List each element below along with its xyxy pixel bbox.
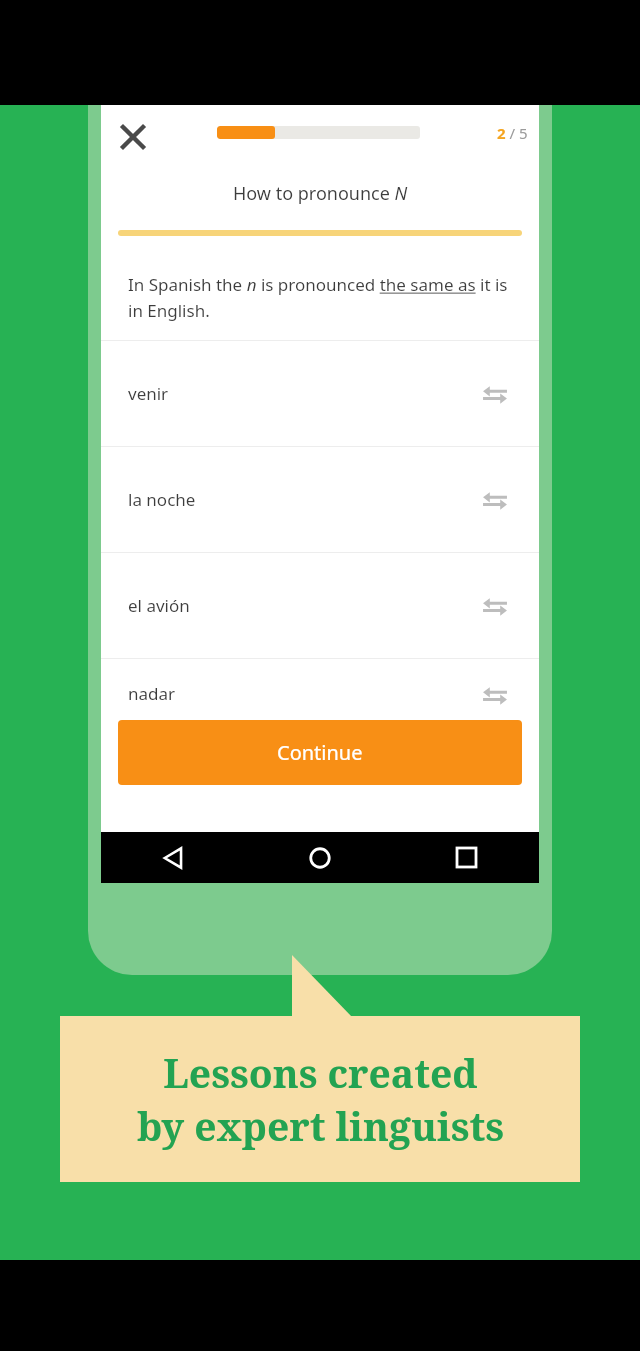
button[interactable]: Swap translation [473,673,517,717]
staticText: 2 / 5 [497,123,528,143]
staticText: venir [128,382,169,405]
staticText: In Spanish the n is pronounced the same … [128,273,508,322]
button[interactable]: Swap translation [473,584,517,628]
staticText: la noche [128,488,196,511]
staticText: How to pronounce N [233,181,408,206]
button[interactable]: Back [101,832,247,883]
button[interactable]: Recent apps [393,832,539,883]
button[interactable]: venir [101,341,539,446]
button[interactable]: Continue [118,720,522,785]
staticText: el avión [128,594,190,617]
button[interactable]: Close [107,111,159,163]
staticText: nadar [128,682,176,705]
button[interactable]: la noche [101,447,539,552]
staticText: Continue [277,739,363,766]
button[interactable]: Swap translation [473,372,517,416]
button[interactable]: el avión [101,553,539,658]
button[interactable]: Home [247,832,393,883]
staticText: Lessons created by expert linguists [137,1046,504,1153]
button[interactable]: Swap translation [473,478,517,522]
